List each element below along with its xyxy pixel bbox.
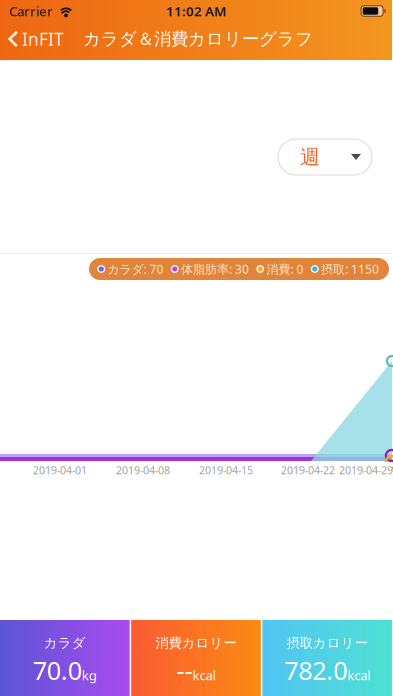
button[interactable]: 消費カロリー [131,620,261,696]
staticText: 70.0 [33,653,82,687]
staticText: 消費カロリー [155,635,236,651]
staticText: 11:02 AM [166,2,226,20]
staticText: 2019-04-29 [339,463,393,477]
staticText: kcal [347,666,370,684]
staticText: kg [82,666,97,684]
staticText: 2019-04-01 [33,463,87,477]
button[interactable]: InFIT [0,23,70,55]
staticText: 2019-04-22 [281,463,335,477]
button[interactable]: 摂取カロリー [262,620,392,696]
staticText: -- [176,653,192,687]
staticText: 週 [300,145,320,169]
staticText: 摂取カロリー [287,635,368,651]
staticText: 摂取: 1150 [321,261,379,277]
staticText: 2019-04-08 [116,463,170,477]
staticText: Carrier [9,2,53,20]
staticText: 782.0 [284,653,347,687]
button[interactable]: カラダ [0,620,130,696]
staticText: 消費: 0 [266,261,303,277]
staticText: 2019-04-15 [199,463,253,477]
staticText: InFIT [22,27,64,50]
staticText: 体脂肪率: 30 [181,261,249,277]
staticText: カラダ: 70 [107,261,163,277]
staticText: kcal [192,666,215,684]
staticText: カラダ＆消費カロリーグラフ [83,28,313,50]
staticText: カラダ [44,635,86,651]
button[interactable]: 週 [278,139,372,175]
